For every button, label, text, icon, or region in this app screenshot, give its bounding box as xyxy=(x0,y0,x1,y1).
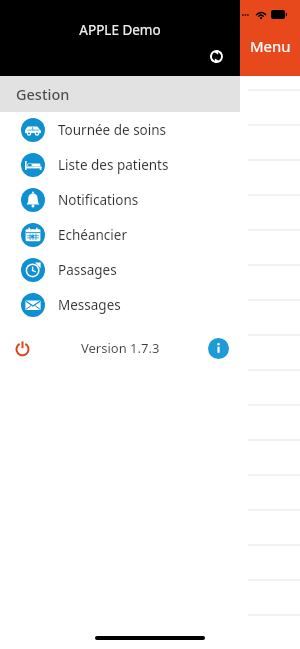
staticText: Passages xyxy=(58,261,117,279)
button[interactable]: Liste des patients xyxy=(0,147,240,182)
staticText: Tournée de soins xyxy=(58,121,167,139)
button[interactable]: Passages xyxy=(0,252,240,287)
staticText: Echéancier xyxy=(58,226,128,244)
button[interactable]: Refresh xyxy=(202,42,230,70)
button[interactable]: Messages xyxy=(0,287,240,322)
button[interactable]: Information xyxy=(205,335,231,361)
staticText: Liste des patients xyxy=(58,156,169,174)
staticText: APPLE Demo xyxy=(79,21,161,39)
staticText: Menu xyxy=(250,36,291,56)
staticText: Version 1.7.3 xyxy=(81,339,160,357)
button[interactable]: Echéancier xyxy=(0,217,240,252)
staticText: Gestion xyxy=(16,84,70,104)
button[interactable]: Tournée de soins xyxy=(0,112,240,147)
button[interactable]: Menu xyxy=(240,0,300,76)
staticText: Messages xyxy=(58,296,121,314)
staticText: Notifications xyxy=(58,191,139,209)
button[interactable]: Power off xyxy=(8,334,36,362)
button[interactable]: Notifications xyxy=(0,182,240,217)
